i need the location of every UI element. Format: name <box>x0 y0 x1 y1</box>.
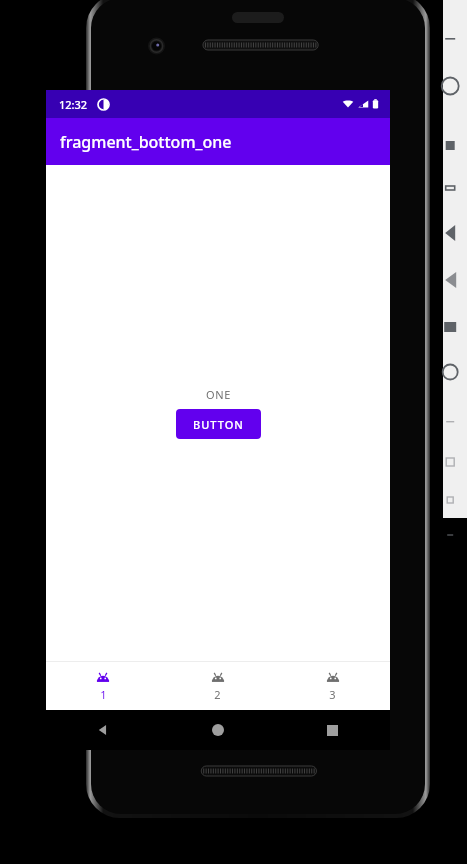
button[interactable]: BUTTON <box>176 409 261 439</box>
staticText: 2 <box>214 687 221 702</box>
staticText: 12:32 <box>59 97 88 112</box>
button[interactable]: Back <box>46 710 160 750</box>
button[interactable]: Tab 3 <box>275 662 390 710</box>
button[interactable]: Tab 1 <box>46 662 160 710</box>
button[interactable]: Recent apps <box>275 710 390 750</box>
button[interactable]: Home <box>160 710 275 750</box>
button[interactable]: Tab 2 <box>160 662 275 710</box>
staticText: BUTTON <box>193 417 244 432</box>
staticText: 1 <box>100 687 107 702</box>
staticText: ONE <box>206 387 231 402</box>
staticText: fragment_bottom_one <box>60 131 232 153</box>
staticText: 3 <box>329 687 336 702</box>
